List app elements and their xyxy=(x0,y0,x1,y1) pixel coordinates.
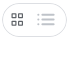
button[interactable]: List view xyxy=(34,3,67,37)
button[interactable]: Grid view xyxy=(2,3,34,37)
